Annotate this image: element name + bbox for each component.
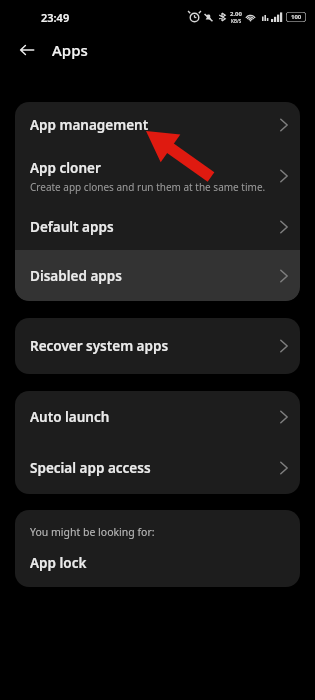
button[interactable]: App management bbox=[15, 102, 300, 148]
button[interactable]: Default apps bbox=[15, 204, 300, 250]
button[interactable]: App cloner bbox=[15, 148, 300, 204]
staticText: You might be looking for: bbox=[30, 525, 155, 539]
staticText: 23:49 bbox=[41, 10, 70, 25]
staticText: 2.00 bbox=[230, 10, 242, 18]
staticText: Recover system apps bbox=[30, 337, 169, 355]
staticText: Apps bbox=[52, 40, 88, 60]
staticText: Auto launch bbox=[30, 408, 110, 426]
staticText: Default apps bbox=[30, 218, 114, 236]
staticText: 100 bbox=[291, 13, 302, 21]
staticText: App management bbox=[30, 116, 149, 134]
staticText: Disabled apps bbox=[30, 267, 122, 285]
button[interactable]: Auto launch bbox=[15, 391, 300, 442]
staticText: KB/S bbox=[231, 18, 242, 24]
button[interactable]: Back bbox=[13, 36, 41, 64]
button[interactable]: App lock bbox=[15, 539, 300, 587]
staticText: Special app access bbox=[30, 459, 151, 477]
button[interactable]: Recover system apps bbox=[15, 318, 300, 374]
staticText: Create app clones and run them at the sa… bbox=[30, 180, 266, 194]
button[interactable]: Special app access bbox=[15, 442, 300, 494]
button[interactable]: Disabled apps bbox=[15, 250, 300, 301]
staticText: App cloner bbox=[30, 159, 101, 177]
staticText: App lock bbox=[30, 554, 87, 572]
